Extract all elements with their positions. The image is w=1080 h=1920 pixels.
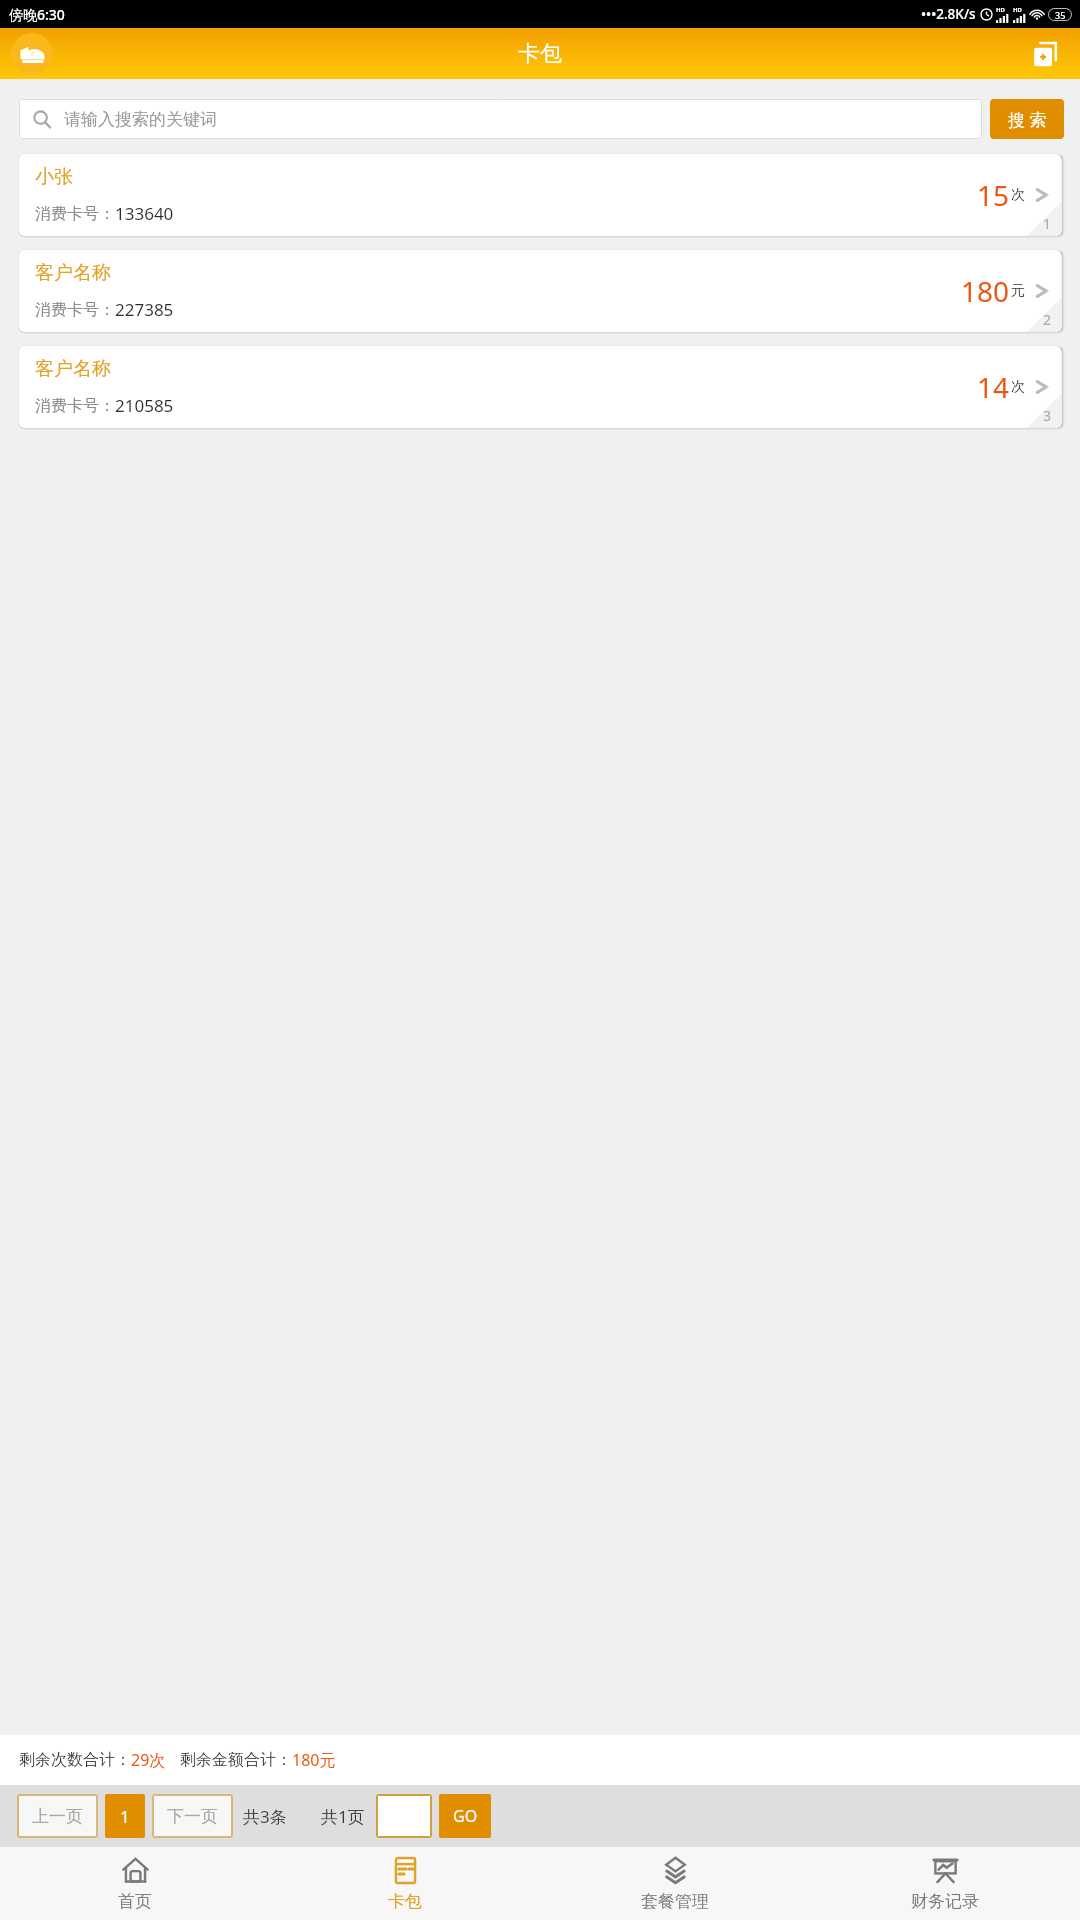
button[interactable]: 套餐管理: [540, 1847, 810, 1920]
button[interactable]: 搜 索: [990, 99, 1064, 139]
button[interactable]: 卡包: [270, 1847, 540, 1920]
staticText: 180元: [292, 1749, 336, 1771]
staticText: •••2.8K/s: [921, 5, 976, 23]
staticText: 消费卡号：: [35, 300, 115, 320]
button[interactable]: 上一页: [17, 1794, 98, 1838]
staticText: 客户名称: [35, 261, 111, 285]
button[interactable]: [376, 1794, 432, 1838]
staticText: 210585: [115, 394, 174, 417]
staticText: 下一页: [167, 1806, 218, 1827]
button[interactable]: Logo: [11, 33, 53, 75]
staticText: 227385: [115, 298, 174, 321]
staticText: 首页: [118, 1891, 152, 1912]
button[interactable]: 下一页: [152, 1794, 233, 1838]
button[interactable]: 客户名称: [19, 250, 1061, 332]
staticText: 1: [120, 1805, 130, 1828]
staticText: 1: [1043, 214, 1052, 233]
staticText: 180: [961, 272, 1010, 310]
staticText: 套餐管理: [641, 1891, 709, 1912]
button[interactable]: 首页: [0, 1847, 270, 1920]
staticText: 客户名称: [35, 357, 111, 381]
staticText: 消费卡号：: [35, 396, 115, 416]
staticText: 133640: [115, 202, 174, 225]
staticText: 剩余次数合计：: [19, 1750, 131, 1770]
staticText: 财务记录: [911, 1891, 979, 1912]
button[interactable]: 请输入搜索的关键词: [19, 99, 982, 139]
staticText: 请输入搜索的关键词: [64, 109, 217, 130]
button[interactable]: 客户名称: [19, 346, 1061, 428]
button[interactable]: GO: [439, 1794, 491, 1838]
button[interactable]: Add card: [1026, 34, 1066, 74]
staticText: 29次: [131, 1749, 166, 1771]
button[interactable]: 小张: [19, 154, 1061, 236]
staticText: 卡包: [518, 40, 562, 68]
staticText: 次: [1011, 378, 1025, 396]
staticText: 35: [1055, 9, 1066, 21]
staticText: GO: [453, 1805, 478, 1827]
button[interactable]: 1: [105, 1794, 145, 1838]
staticText: 消费卡号：: [35, 204, 115, 224]
staticText: HD: [1013, 6, 1022, 14]
staticText: 次: [1011, 186, 1025, 204]
staticText: 卡包: [388, 1891, 422, 1912]
staticText: 傍晚6:30: [9, 5, 65, 24]
staticText: 共3条: [243, 1805, 287, 1828]
staticText: 元: [1011, 282, 1025, 300]
staticText: 剩余金额合计：: [180, 1750, 292, 1770]
staticText: 搜 索: [1008, 108, 1047, 131]
staticText: 3: [1043, 406, 1052, 425]
staticText: 上一页: [32, 1806, 83, 1827]
staticText: 15: [977, 176, 1010, 214]
staticText: HD: [996, 6, 1005, 14]
staticText: 小张: [35, 165, 73, 189]
button[interactable]: 财务记录: [810, 1847, 1080, 1920]
staticText: 共1页: [321, 1805, 365, 1828]
staticText: 2: [1043, 310, 1052, 329]
staticText: 14: [977, 368, 1010, 406]
